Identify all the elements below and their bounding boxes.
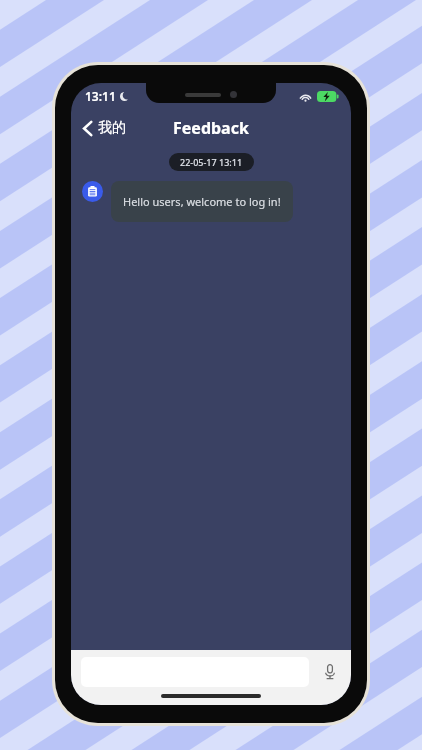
staticText: 我的	[98, 119, 126, 137]
button[interactable]: 我的	[71, 109, 136, 147]
button[interactable]: Sender avatar	[82, 181, 103, 202]
button[interactable]: Voice input	[317, 659, 343, 685]
button[interactable]: Hello users, welcome to log in!	[111, 181, 293, 222]
staticText: Hello users, welcome to log in!	[123, 194, 281, 209]
staticText: 13:11	[85, 88, 116, 104]
staticText: Feedback	[173, 117, 249, 139]
staticText: 22-05-17 13:11	[180, 156, 243, 168]
